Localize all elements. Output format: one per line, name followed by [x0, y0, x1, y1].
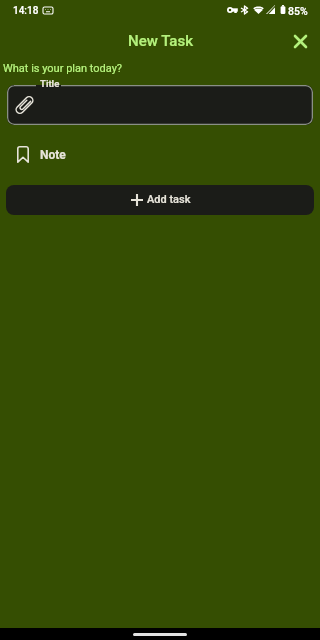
staticText: New Task: [128, 32, 193, 50]
staticText: Add task: [147, 193, 191, 206]
staticText: 85%: [288, 5, 308, 17]
staticText: Note: [40, 148, 66, 162]
button[interactable]: [7, 85, 313, 125]
staticText: 14:18: [13, 5, 39, 17]
button[interactable]: Note: [10, 142, 73, 166]
staticText: Title: [40, 78, 60, 89]
staticText: What is your plan today?: [3, 62, 123, 75]
button[interactable]: Close: [288, 29, 312, 53]
button[interactable]: Add task: [6, 185, 314, 215]
